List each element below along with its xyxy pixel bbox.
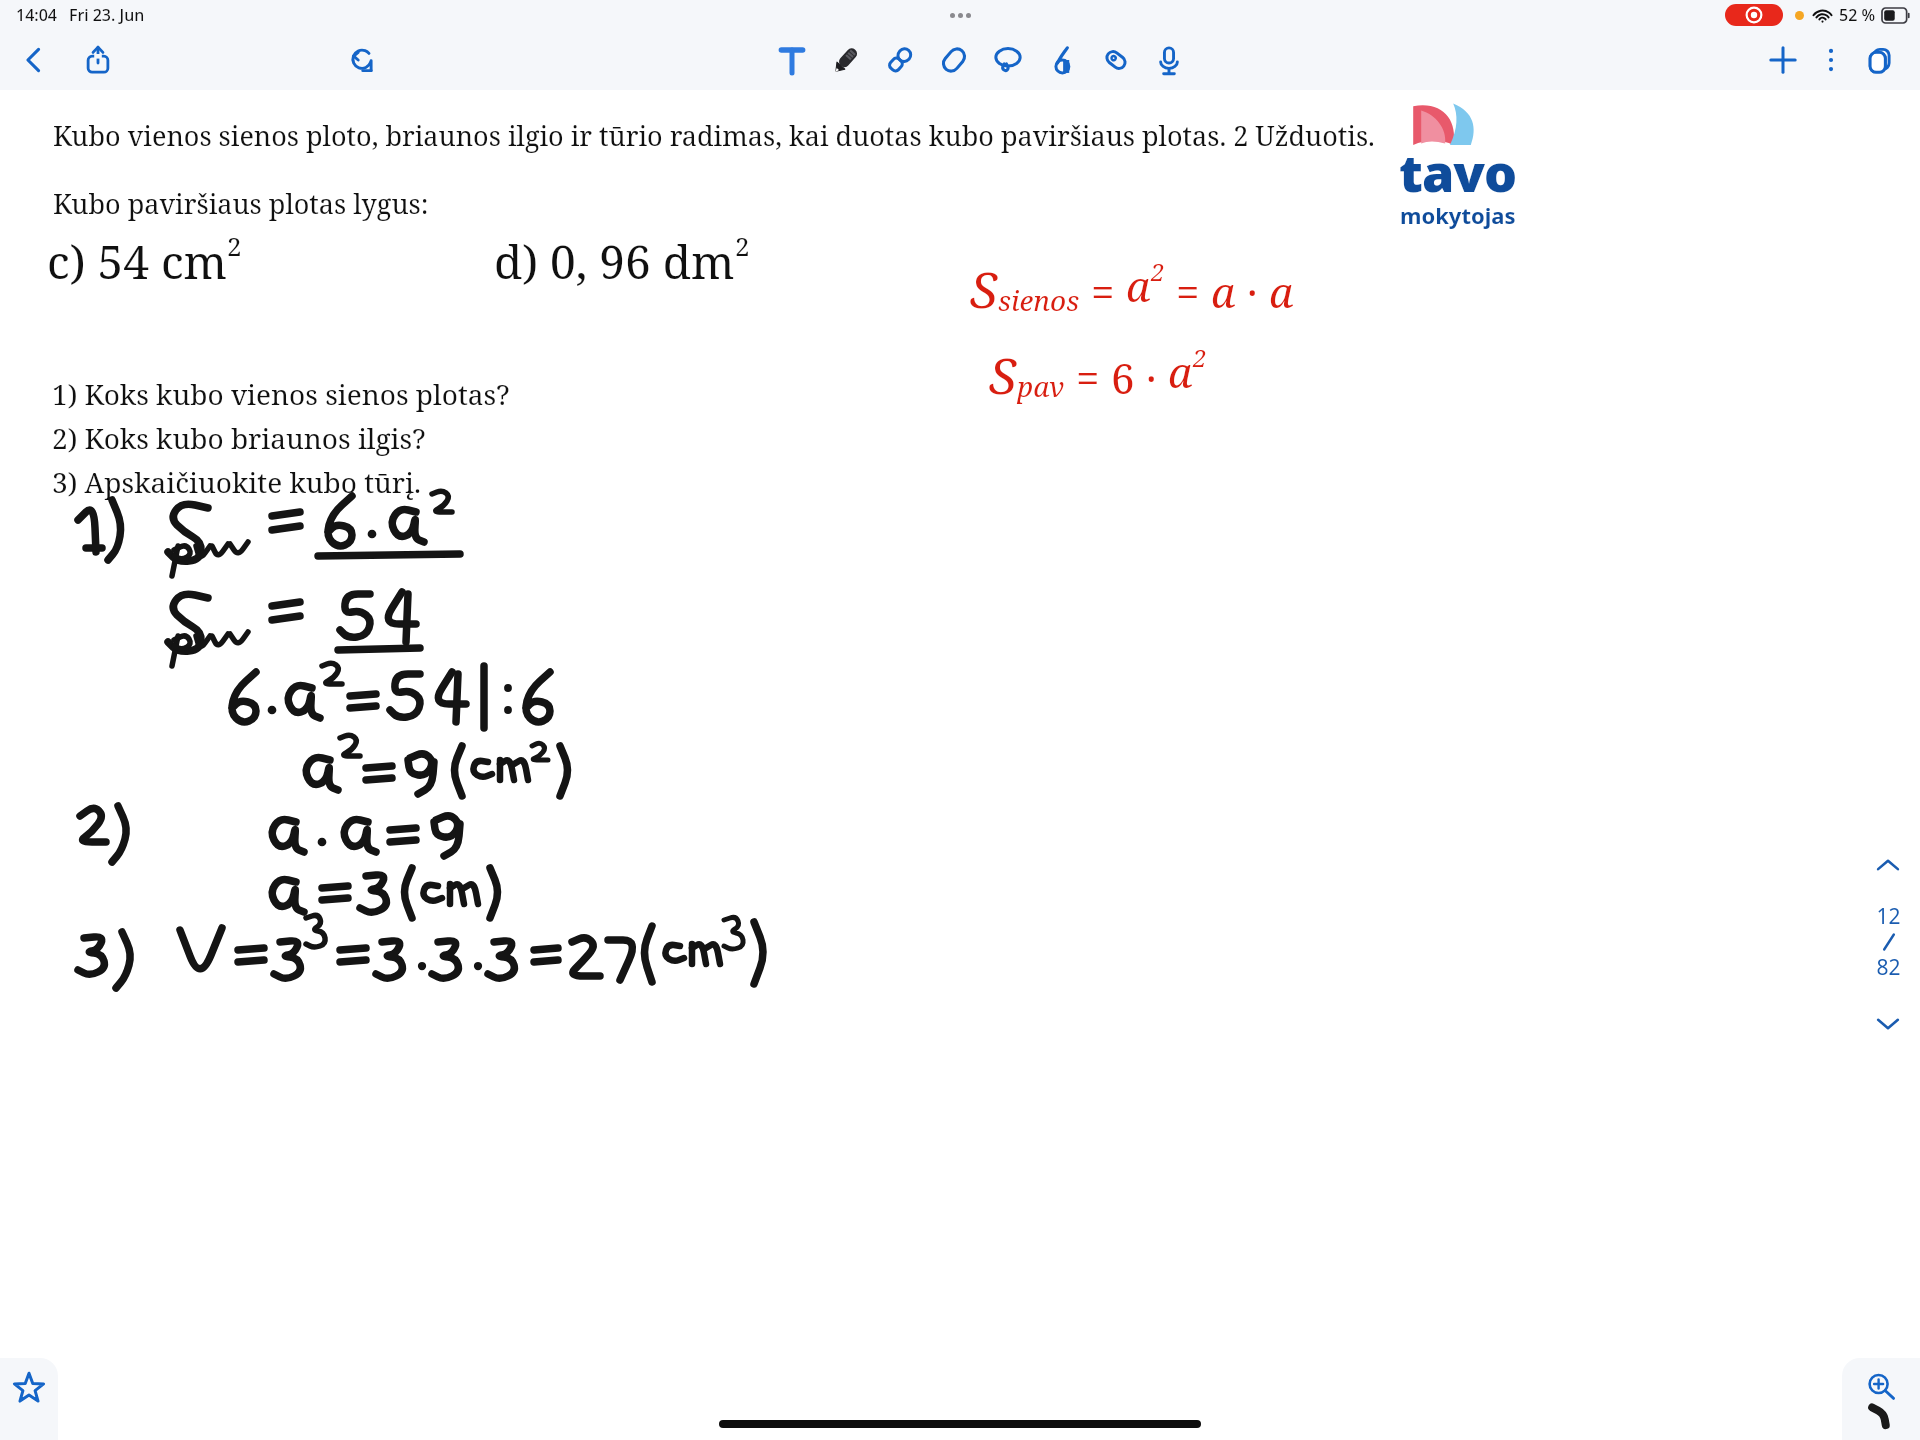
staticText: Fri 23. Jun bbox=[69, 4, 145, 26]
staticText: S bbox=[970, 255, 998, 323]
button[interactable]: Back bbox=[8, 30, 60, 90]
button[interactable]: Eraser bbox=[927, 30, 981, 90]
staticText: sienos bbox=[998, 281, 1080, 319]
staticText: 12 bbox=[1876, 902, 1901, 931]
button[interactable]: Shape tool bbox=[1089, 30, 1143, 90]
button[interactable]: Hand tool bbox=[1035, 30, 1089, 90]
staticText: 2 bbox=[735, 228, 750, 263]
staticText: c) 54 cm bbox=[47, 230, 227, 293]
button[interactable]: Share bbox=[72, 30, 124, 90]
staticText: 2) Koks kubo briaunos ilgis? bbox=[52, 419, 426, 457]
button[interactable]: Favourite bbox=[0, 1358, 58, 1440]
staticText: pav bbox=[1017, 367, 1065, 405]
button[interactable]: Pen bbox=[819, 30, 873, 90]
staticText: = bbox=[1080, 263, 1126, 320]
button[interactable]: Highlighter bbox=[873, 30, 927, 90]
button[interactable]: Record audio bbox=[1143, 30, 1195, 90]
staticText: mokytojas bbox=[1400, 200, 1516, 230]
button[interactable]: Add page bbox=[1756, 30, 1810, 90]
staticText: d) 0, 96 dm bbox=[494, 230, 735, 293]
button[interactable]: Lasso select bbox=[981, 30, 1035, 90]
staticText: 2 bbox=[227, 228, 242, 263]
staticText: 1) Koks kubo vienos sienos plotas? bbox=[52, 375, 510, 413]
staticText: a bbox=[1168, 343, 1193, 400]
staticText: = bbox=[1065, 349, 1111, 406]
staticText: Kubo vienos sienos ploto, briaunos ilgio… bbox=[53, 117, 1375, 154]
button[interactable]: Page thumbnails bbox=[1852, 30, 1908, 90]
staticText: a bbox=[1269, 263, 1294, 320]
staticText: 2 bbox=[1193, 341, 1207, 374]
button[interactable]: More options bbox=[1810, 30, 1852, 90]
button[interactable]: Text tool bbox=[765, 30, 819, 90]
button[interactable]: Next page bbox=[1866, 1002, 1910, 1046]
staticText: tavo bbox=[1399, 136, 1517, 207]
button[interactable]: 12 bbox=[1876, 902, 1901, 982]
staticText: a bbox=[1211, 263, 1236, 320]
staticText: Kubo paviršiaus plotas lygus: bbox=[53, 185, 429, 222]
button[interactable]: Previous page bbox=[1866, 844, 1910, 888]
staticText: S bbox=[989, 341, 1017, 409]
staticText: = bbox=[1165, 263, 1211, 320]
staticText: 52 % bbox=[1839, 4, 1876, 26]
staticText: 3) Apskaičiuokite kubo tūrį. bbox=[52, 463, 421, 501]
staticText: · bbox=[1135, 349, 1168, 406]
button[interactable]: Zoom in bbox=[1862, 1368, 1900, 1406]
staticText: 14:04 bbox=[16, 4, 57, 26]
staticText: 2 bbox=[1151, 255, 1165, 288]
staticText: 6 bbox=[1111, 349, 1135, 406]
button[interactable]: Undo bbox=[336, 30, 388, 90]
staticText: · bbox=[1236, 263, 1269, 320]
staticText: 82 bbox=[1876, 953, 1901, 982]
staticText: a bbox=[1126, 257, 1151, 314]
